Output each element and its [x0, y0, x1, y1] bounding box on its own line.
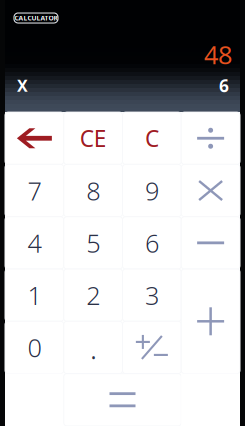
- staticText: 5: [86, 226, 100, 260]
- staticText: 3: [145, 278, 159, 312]
- staticText: 8: [86, 174, 100, 207]
- button[interactable]: Divide: [181, 112, 240, 164]
- staticText: .: [90, 327, 97, 368]
- staticText: 48: [204, 38, 232, 71]
- button[interactable]: Decimal point: [64, 321, 123, 374]
- button[interactable]: 6: [122, 217, 181, 269]
- staticText: 6: [145, 226, 159, 260]
- button[interactable]: Plus minus: [122, 321, 181, 374]
- button[interactable]: Clear entry: [64, 112, 123, 164]
- staticText: 0: [27, 331, 41, 364]
- button[interactable]: 4: [5, 217, 64, 269]
- button[interactable]: Multiply: [181, 164, 240, 217]
- staticText: 9: [145, 174, 159, 207]
- staticText: CE: [80, 123, 107, 153]
- staticText: CALCULATOR: [14, 14, 57, 22]
- button[interactable]: 5: [64, 217, 123, 269]
- staticText: 1: [27, 278, 41, 312]
- staticText: 7: [27, 174, 41, 207]
- staticText: C: [145, 123, 159, 153]
- button[interactable]: 3: [122, 269, 181, 321]
- staticText: X: [17, 75, 28, 96]
- staticText: 4: [27, 226, 41, 260]
- button[interactable]: 8: [64, 164, 123, 217]
- button[interactable]: Equals: [64, 374, 181, 426]
- button[interactable]: 1: [5, 269, 64, 321]
- button[interactable]: Backspace: [5, 112, 64, 164]
- button[interactable]: Add: [181, 269, 240, 374]
- button[interactable]: 2: [64, 269, 123, 321]
- staticText: 6: [219, 74, 229, 97]
- staticText: 2: [86, 278, 100, 312]
- button[interactable]: 9: [122, 164, 181, 217]
- button[interactable]: Clear: [122, 112, 181, 164]
- button[interactable]: 0: [5, 321, 64, 374]
- button[interactable]: 7: [5, 164, 64, 217]
- button[interactable]: CALCULATOR: [14, 13, 58, 23]
- button[interactable]: Subtract: [181, 217, 240, 269]
